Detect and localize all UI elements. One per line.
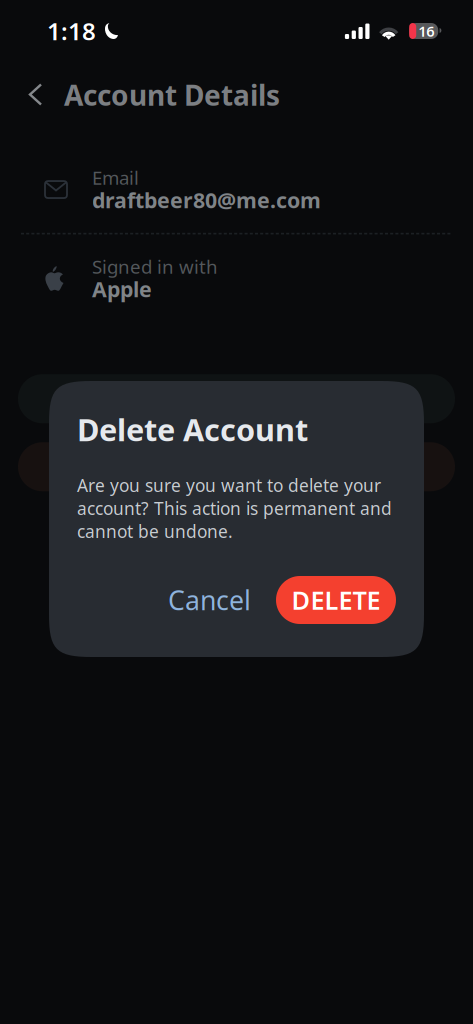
staticText: Cancel xyxy=(168,582,251,618)
button[interactable]: Back xyxy=(14,73,58,117)
button[interactable]: Cancel xyxy=(158,576,261,624)
staticText: 1:18 xyxy=(47,15,96,47)
staticText: Are you sure you want to delete your acc… xyxy=(77,474,392,543)
button[interactable]: DELETE xyxy=(276,576,396,624)
staticText: DELETE xyxy=(291,583,380,617)
staticText: Signed in with xyxy=(92,254,218,279)
staticText: Apple xyxy=(92,275,152,303)
staticText: 16 xyxy=(418,21,434,41)
staticText: Delete Account xyxy=(77,409,308,450)
staticText: Email xyxy=(92,165,139,190)
staticText: Account Details xyxy=(64,76,280,114)
staticText: draftbeer80@me.com xyxy=(92,186,321,214)
